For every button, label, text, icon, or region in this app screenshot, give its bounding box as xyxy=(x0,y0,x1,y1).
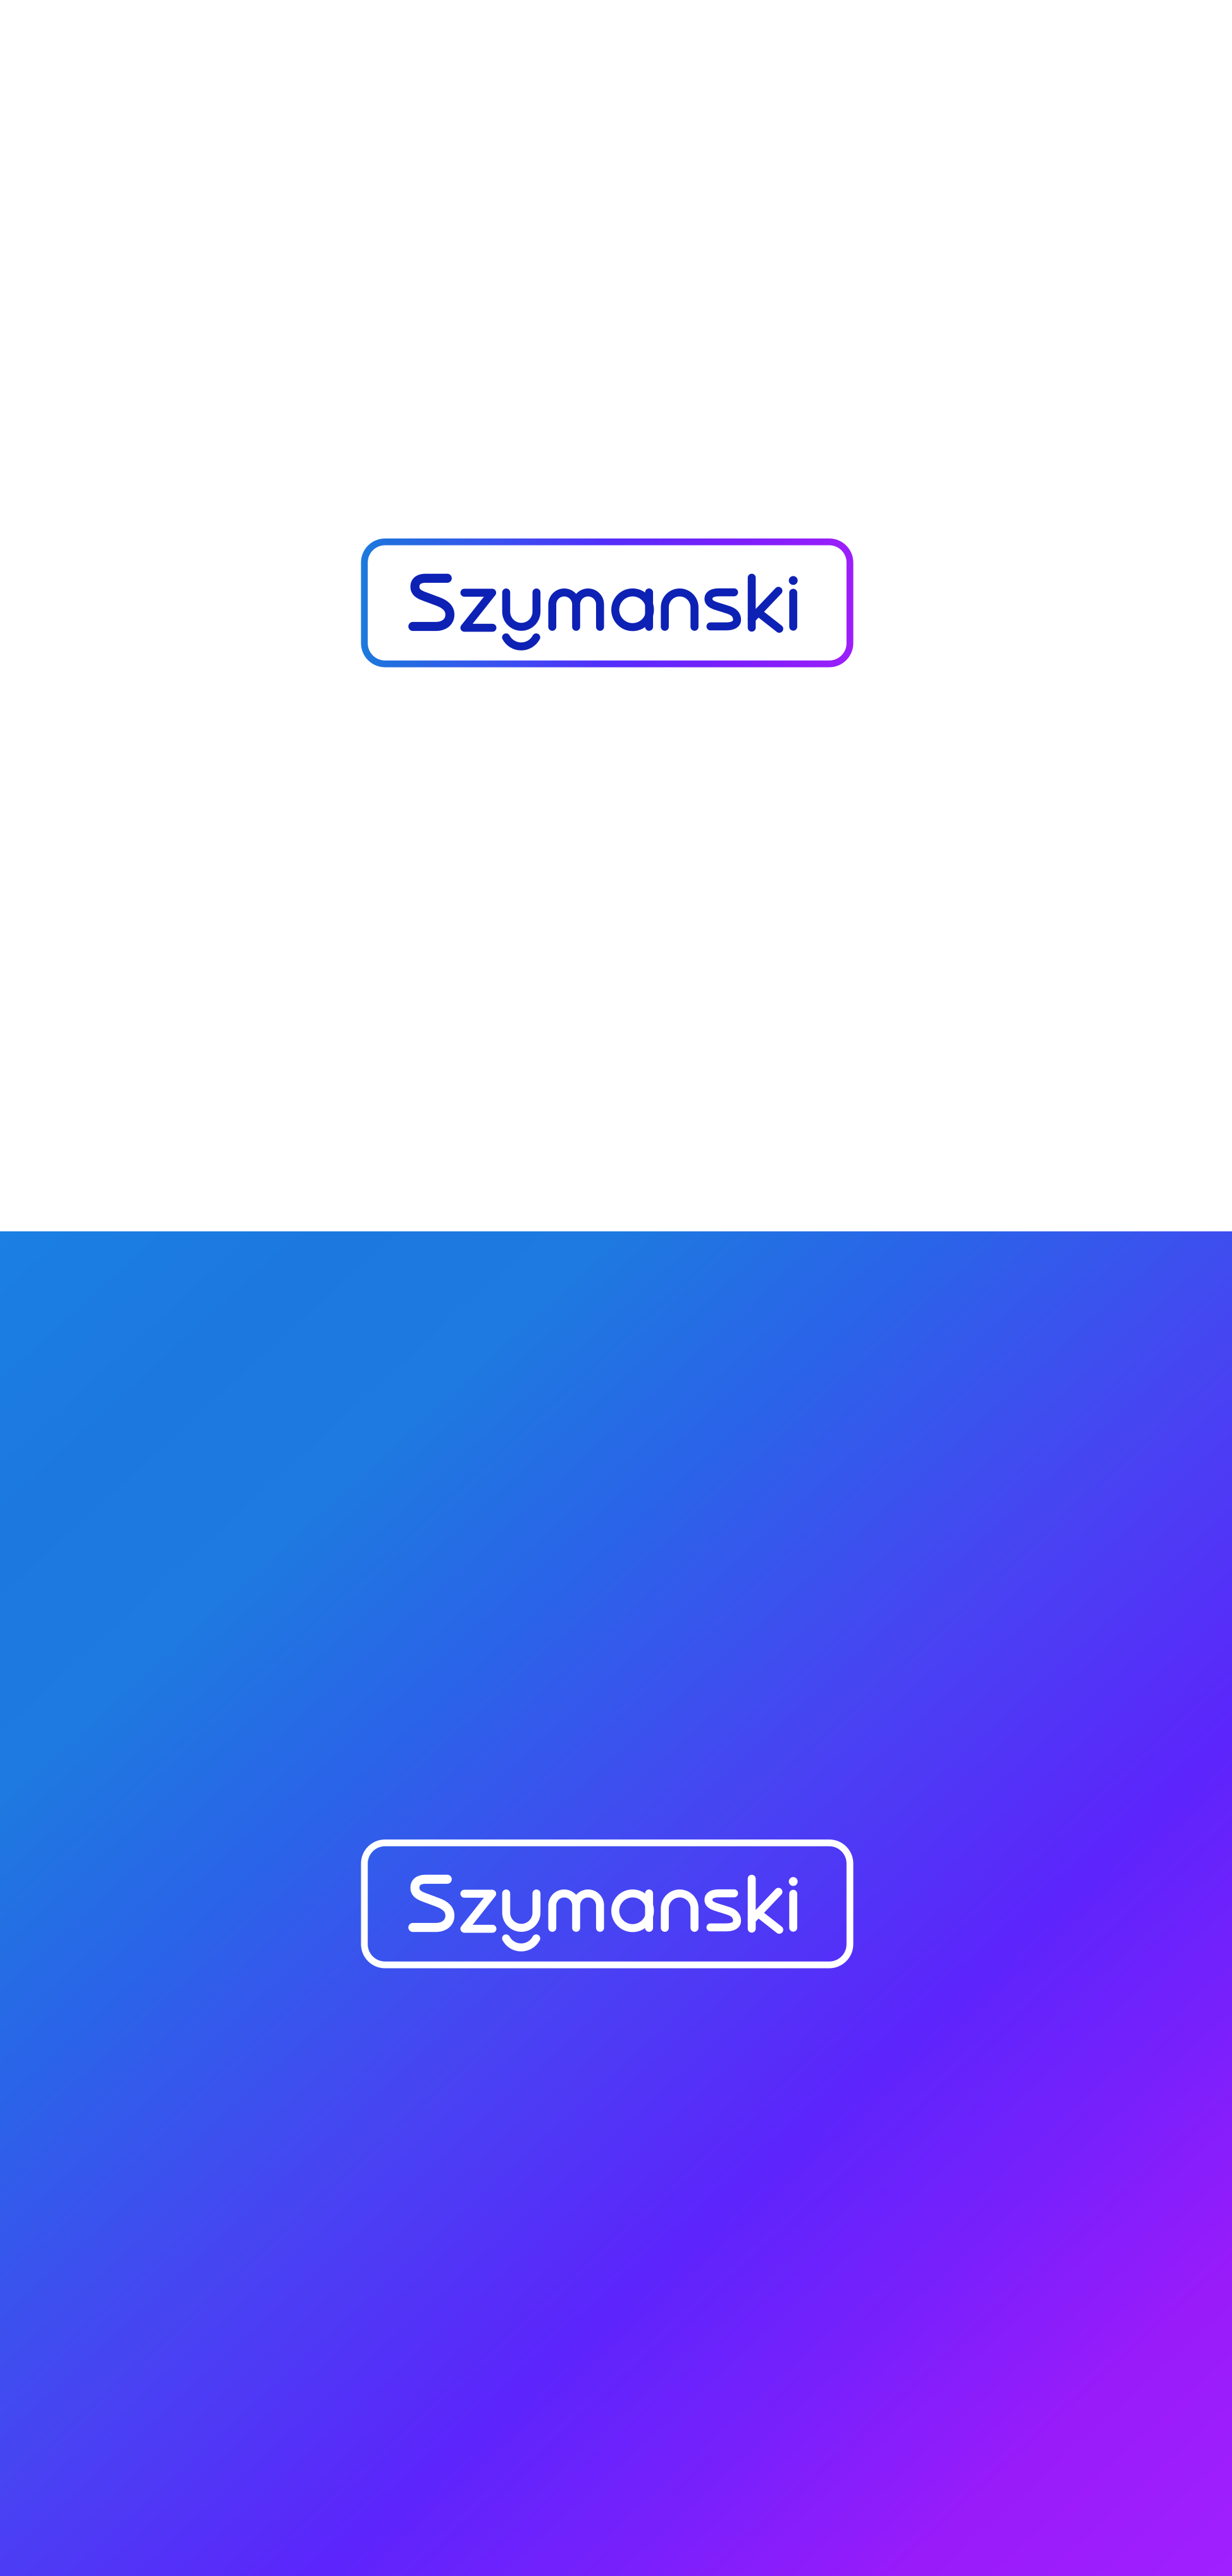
button[interactable]: Szymanski logo xyxy=(361,538,853,667)
button[interactable]: Szymanski logo reversed xyxy=(361,1840,853,1968)
